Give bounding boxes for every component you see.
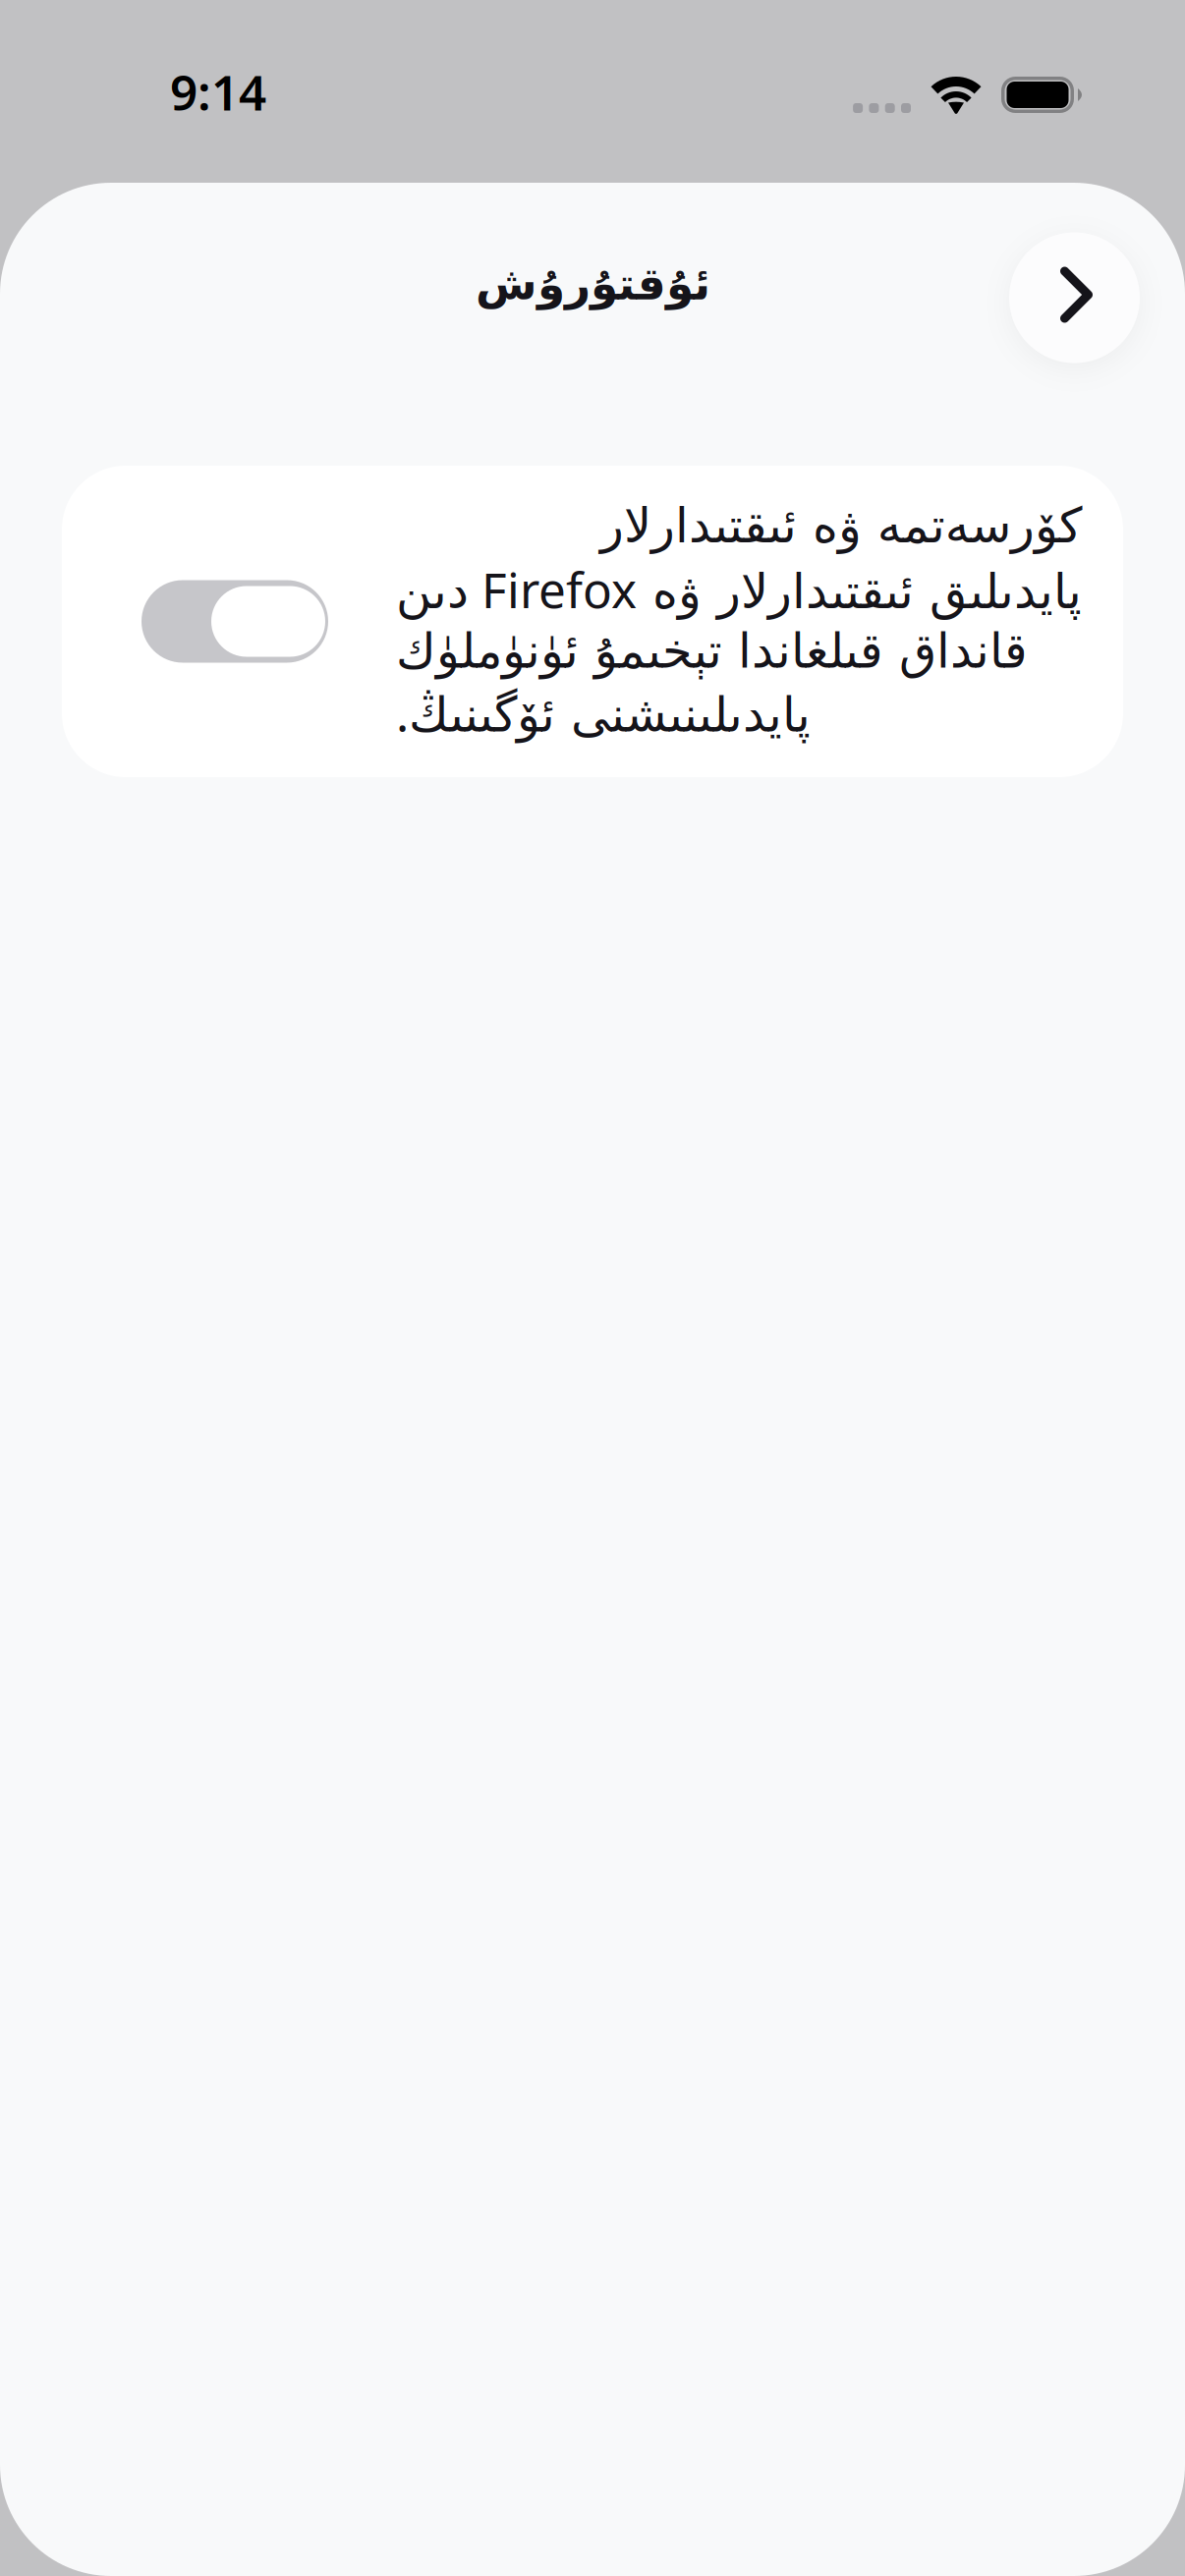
- staticText: پايدىلىق ئىقتىدارلار ۋە Firefox دىن قاند…: [396, 557, 1082, 745]
- button[interactable]: Toggle notifications: [141, 580, 328, 663]
- staticText: 9:14: [170, 59, 266, 124]
- staticText: ئۇقتۇرۇش: [475, 259, 710, 309]
- button[interactable]: كۆرسەتمە ۋە ئىقتىدارلار: [62, 466, 1123, 777]
- staticText: كۆرسەتمە ۋە ئىقتىدارلار: [600, 498, 1082, 553]
- button[interactable]: Close: [1009, 232, 1140, 363]
